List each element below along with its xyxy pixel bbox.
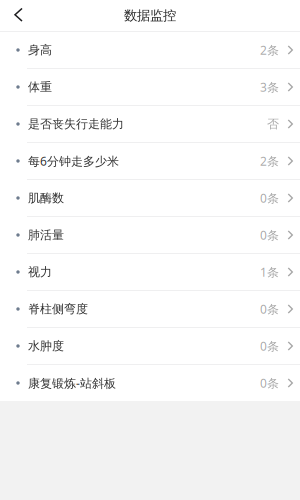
staticText: 身高 bbox=[28, 43, 52, 57]
staticText: 视力 bbox=[28, 265, 52, 279]
staticText: 0条 bbox=[260, 190, 279, 206]
staticText: 2条 bbox=[260, 153, 279, 169]
staticText: 0条 bbox=[260, 375, 279, 391]
staticText: 否 bbox=[267, 117, 279, 131]
staticText: 每6分钟走多少米 bbox=[28, 153, 119, 169]
staticText: 3条 bbox=[260, 79, 279, 95]
staticText: 0条 bbox=[260, 301, 279, 317]
staticText: 肺活量 bbox=[28, 228, 64, 242]
button[interactable]: 身高 bbox=[0, 32, 300, 69]
staticText: 康复锻炼-站斜板 bbox=[28, 375, 116, 391]
button[interactable]: 水肿度 bbox=[0, 328, 300, 365]
staticText: 1条 bbox=[260, 264, 279, 280]
button[interactable]: 肺活量 bbox=[0, 217, 300, 254]
staticText: 0条 bbox=[260, 338, 279, 354]
button[interactable]: 肌酶数 bbox=[0, 180, 300, 217]
staticText: 体重 bbox=[28, 80, 52, 94]
staticText: 是否丧失行走能力 bbox=[28, 117, 124, 131]
button[interactable]: 是否丧失行走能力 bbox=[0, 106, 300, 143]
staticText: 脊柱侧弯度 bbox=[28, 302, 88, 316]
button[interactable]: 康复锻炼-站斜板 bbox=[0, 365, 300, 401]
button[interactable]: Back bbox=[0, 0, 33, 31]
button[interactable]: 体重 bbox=[0, 69, 300, 106]
button[interactable]: 脊柱侧弯度 bbox=[0, 291, 300, 328]
staticText: 2条 bbox=[260, 42, 279, 58]
staticText: 水肿度 bbox=[28, 339, 64, 353]
button[interactable]: 视力 bbox=[0, 254, 300, 291]
button[interactable]: 每6分钟走多少米 bbox=[0, 143, 300, 180]
staticText: 肌酶数 bbox=[28, 191, 64, 205]
staticText: 数据监控 bbox=[124, 7, 176, 24]
staticText: 0条 bbox=[260, 227, 279, 243]
